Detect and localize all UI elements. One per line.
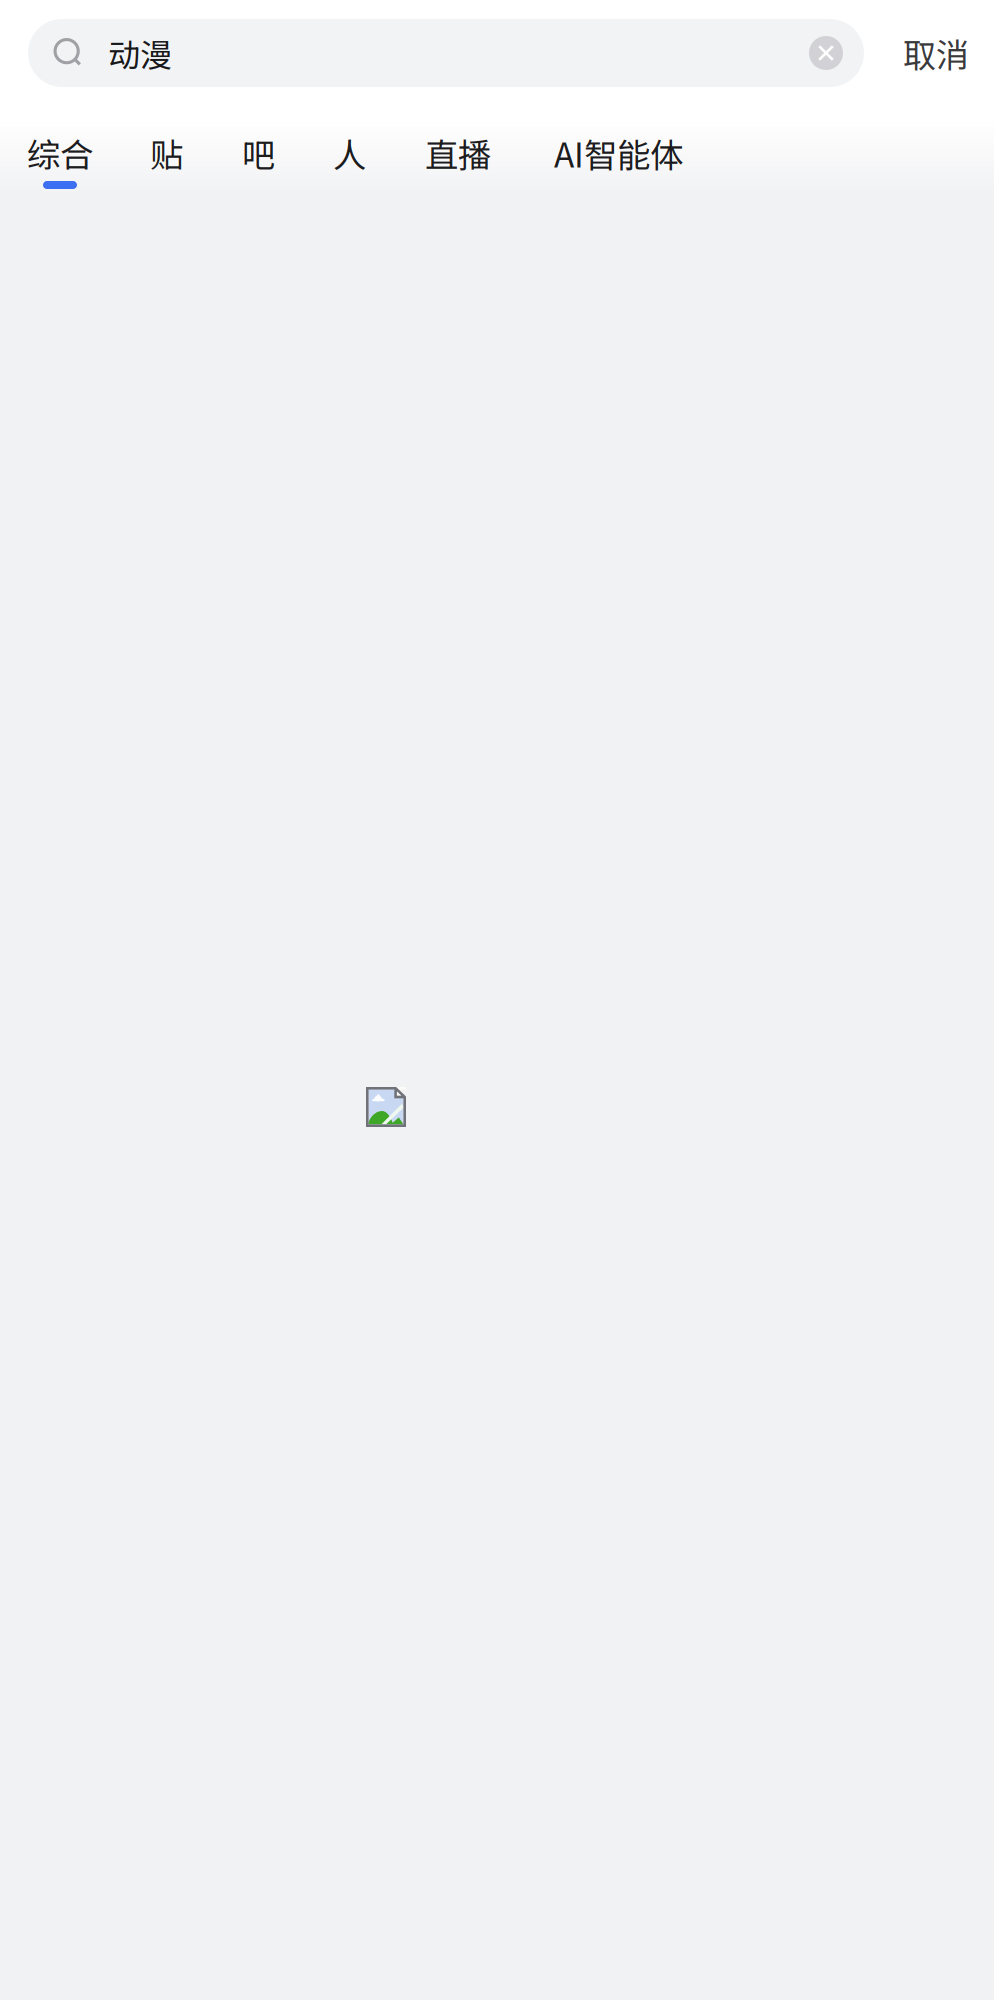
button[interactable]: 直播 xyxy=(425,136,491,189)
button[interactable]: 取消 xyxy=(883,19,994,87)
button[interactable]: 贴 xyxy=(150,136,183,189)
staticText: 直播 xyxy=(425,129,491,177)
button[interactable]: AI智能体 xyxy=(554,136,683,189)
button[interactable]: 吧 xyxy=(242,136,275,189)
button[interactable]: 综合 xyxy=(27,136,93,189)
button[interactable]: 人 xyxy=(333,136,366,189)
staticText: 动漫 xyxy=(108,30,172,76)
staticText: 综合 xyxy=(27,129,93,177)
button[interactable]: 动漫 xyxy=(28,19,799,87)
staticText: 人 xyxy=(333,129,366,177)
staticText: 吧 xyxy=(242,129,275,177)
staticText: AI智能体 xyxy=(554,129,683,177)
staticText: 贴 xyxy=(150,129,183,177)
button[interactable]: Clear search text xyxy=(799,19,864,87)
staticText: 取消 xyxy=(903,29,969,77)
